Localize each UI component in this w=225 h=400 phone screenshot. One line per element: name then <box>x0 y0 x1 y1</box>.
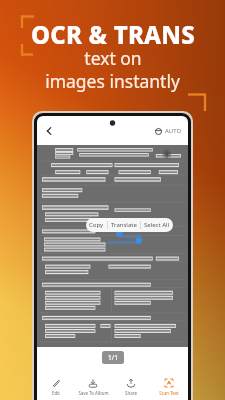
staticText: Select All <box>144 221 170 229</box>
button[interactable]: AUTO <box>155 127 182 135</box>
button[interactable]: Copy <box>86 218 107 232</box>
button[interactable]: Select All <box>141 218 173 232</box>
staticText: 1/1 <box>108 353 118 362</box>
button[interactable]: Share <box>112 374 150 400</box>
staticText: Translate <box>111 221 137 229</box>
staticText: OCR & TRANS <box>31 18 195 51</box>
staticText: text on <box>84 46 142 70</box>
staticText: Share <box>125 390 137 396</box>
staticText: Copy <box>89 221 104 229</box>
button[interactable]: Translate <box>108 218 140 232</box>
staticText: Scan Text <box>159 390 179 396</box>
staticText: AUTO <box>165 127 182 135</box>
staticText: Edit <box>52 390 60 396</box>
staticText: Save To Album <box>78 390 109 396</box>
button[interactable]: Save To Album <box>74 374 112 400</box>
staticText: images instantly <box>45 69 180 93</box>
button[interactable]: Edit <box>37 374 74 400</box>
button[interactable]: Back <box>40 122 58 140</box>
button[interactable]: Scan Text <box>150 374 188 400</box>
